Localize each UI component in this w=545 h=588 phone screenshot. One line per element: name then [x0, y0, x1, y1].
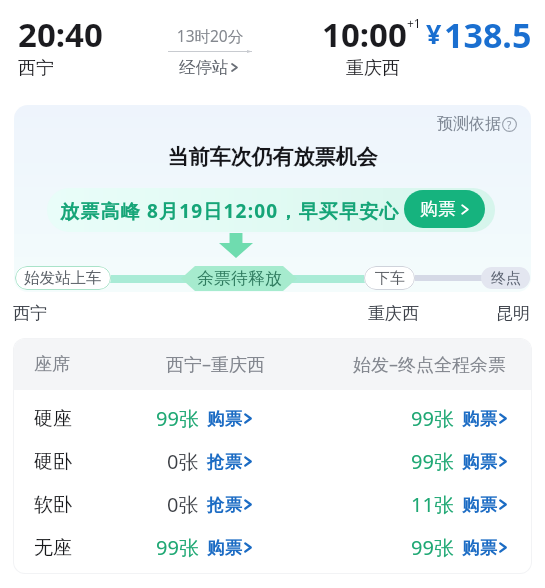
button[interactable]: 99张 [411, 530, 507, 565]
staticText: 重庆西 [368, 303, 419, 324]
button[interactable]: 99张 [411, 444, 507, 479]
staticText: 11张 [411, 491, 454, 518]
staticText: ? [507, 118, 512, 132]
staticText: 购票 [420, 198, 456, 221]
staticText: 购票 [462, 537, 497, 559]
staticText: 99张 [411, 448, 454, 475]
staticText: 抢票 [207, 451, 242, 473]
button[interactable]: 11张 [411, 487, 507, 522]
staticText: 13时20分 [168, 25, 252, 46]
staticText: 138.5 [444, 12, 532, 58]
staticText: 座席 [34, 353, 70, 376]
staticText: 经停站 [179, 57, 229, 78]
staticText: 10:00 [322, 12, 407, 57]
staticText: 西宁–重庆西 [166, 352, 265, 377]
button[interactable]: 购票 [404, 190, 485, 228]
staticText: 昆明 [496, 303, 530, 324]
staticText: 无座 [34, 536, 72, 560]
staticText: 放票高峰 8月19日12:00，早买早安心 [60, 198, 400, 224]
staticText: 抢票 [207, 494, 242, 516]
staticText: 购票 [207, 408, 242, 430]
staticText: 始发站上车 [24, 268, 102, 288]
staticText: +1 [407, 15, 421, 31]
staticText: 重庆西 [346, 57, 400, 80]
staticText: 购票 [207, 537, 242, 559]
staticText: 下车 [375, 269, 405, 288]
staticText: 99张 [411, 405, 454, 432]
staticText: 当前车次仍有放票机会 [14, 144, 531, 170]
button[interactable]: 99张 [156, 401, 252, 436]
staticText: 余票待释放 [197, 268, 282, 289]
staticText: 软卧 [34, 493, 72, 517]
staticText: 预测依据 [437, 114, 501, 134]
staticText: 购票 [462, 494, 497, 516]
button[interactable]: 99张 [411, 401, 507, 436]
staticText: 99张 [411, 534, 454, 561]
staticText: 99张 [156, 534, 199, 561]
staticText: 硬卧 [34, 450, 72, 474]
button[interactable]: 0张 [167, 444, 252, 479]
staticText: 购票 [462, 408, 497, 430]
staticText: 终点 [491, 269, 521, 288]
staticText: 西宁 [13, 303, 47, 324]
staticText: 西宁 [18, 57, 54, 80]
staticText: 0张 [167, 491, 199, 518]
staticText: 99张 [156, 405, 199, 432]
staticText: ¥ [426, 15, 442, 52]
button[interactable]: 99张 [156, 530, 252, 565]
staticText: 20:40 [18, 12, 103, 57]
button[interactable]: 0张 [167, 487, 252, 522]
staticText: 硬座 [34, 407, 72, 431]
staticText: 始发–终点全程余票 [353, 352, 506, 377]
button[interactable]: 经停站 [166, 57, 250, 78]
button[interactable]: 预测依据 [437, 114, 517, 134]
staticText: 0张 [167, 448, 199, 475]
staticText: 购票 [462, 451, 497, 473]
